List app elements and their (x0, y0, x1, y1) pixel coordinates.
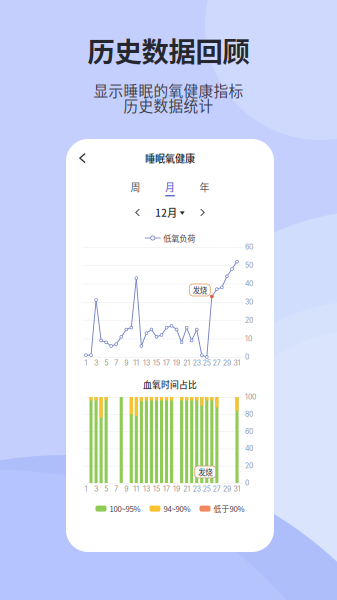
staticText: 27 (213, 485, 221, 493)
button[interactable]: 年 (187, 182, 222, 199)
staticText: 100 (245, 393, 256, 401)
staticText: 27 (213, 359, 221, 367)
staticText: 9 (124, 359, 128, 367)
staticText: 13 (143, 359, 150, 367)
button[interactable]: 返回 (72, 146, 92, 169)
staticText: 25 (203, 485, 211, 493)
staticText: 5 (104, 359, 108, 367)
staticText: 1 (84, 359, 87, 367)
staticText: 94~90% (163, 503, 190, 514)
staticText: 31 (233, 359, 240, 367)
staticText: 睡眠氧健康 (145, 151, 195, 165)
staticText: 0 (245, 353, 249, 361)
staticText: 17 (163, 359, 170, 367)
staticText: 31 (233, 485, 240, 493)
staticText: 历史数据回顾 (87, 30, 249, 70)
staticText: 3 (94, 359, 98, 367)
staticText: 23 (193, 359, 201, 367)
button[interactable]: 周 (118, 182, 153, 199)
staticText: 50 (245, 261, 253, 269)
staticText: 历史数据统计 (123, 94, 213, 116)
staticText: 17 (163, 485, 170, 493)
staticText: 30 (245, 298, 253, 306)
staticText: 40 (245, 279, 253, 288)
staticText: 10 (245, 334, 252, 343)
staticText: 19 (173, 359, 180, 367)
staticText: 40 (245, 444, 253, 453)
staticText: 60 (245, 427, 253, 436)
staticText: 11 (133, 359, 139, 367)
button[interactable]: 下个月 (195, 206, 211, 219)
staticText: 11 (133, 485, 139, 493)
staticText: 29 (223, 485, 231, 493)
staticText: 5 (104, 485, 108, 493)
staticText: 13 (143, 485, 150, 493)
staticText: 100~95% (109, 503, 140, 514)
staticText: 7 (114, 359, 118, 367)
staticText: 周 (130, 180, 140, 194)
staticText: 低于90% (213, 503, 244, 514)
staticText: 12月 (155, 205, 177, 220)
staticText: 29 (223, 359, 231, 367)
staticText: 7 (114, 485, 118, 493)
staticText: 月 (165, 180, 175, 194)
staticText: 血氧时间占比 (143, 378, 197, 391)
staticText: 21 (183, 359, 190, 367)
button[interactable]: 月 (153, 182, 187, 199)
staticText: 9 (124, 485, 128, 493)
staticText: 21 (183, 485, 190, 493)
staticText: 60 (245, 243, 253, 251)
staticText: 25 (203, 359, 211, 367)
staticText: 年 (199, 180, 209, 194)
button[interactable]: 上个月 (129, 206, 145, 219)
staticText: 80 (245, 410, 253, 418)
staticText: 显示睡眠的氧健康指标 (93, 79, 243, 101)
staticText: 发烧 (198, 467, 212, 477)
staticText: 15 (153, 359, 160, 367)
button[interactable]: 12月 (145, 206, 195, 219)
staticText: 0 (245, 479, 249, 487)
staticText: 低氧负荷 (163, 232, 195, 244)
staticText: 23 (193, 485, 201, 493)
staticText: 3 (94, 485, 98, 493)
staticText: 1 (84, 485, 87, 493)
staticText: 19 (173, 485, 180, 493)
staticText: 发烧 (193, 285, 207, 295)
staticText: 15 (153, 485, 160, 493)
staticText: 20 (245, 316, 253, 324)
staticText: 20 (245, 462, 253, 470)
